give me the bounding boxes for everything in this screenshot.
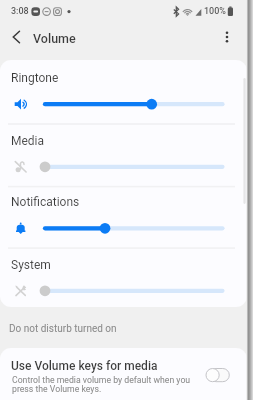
staticText: 3:08 (11, 6, 29, 17)
staticText: Volume (33, 31, 76, 46)
button[interactable] (0, 348, 247, 400)
staticText: Notifications (11, 195, 80, 209)
button[interactable]: Navigate up (6, 27, 26, 47)
button[interactable] (0, 136, 247, 198)
staticText: Ringtone (11, 71, 59, 85)
staticText: 100% (204, 6, 226, 17)
staticText: Do not disturb turned on (9, 323, 117, 335)
staticText: Use Volume keys for media (11, 359, 158, 373)
staticText: Control the media volume by default when… (12, 375, 191, 395)
staticText: Media (11, 134, 45, 148)
button[interactable]: More options (216, 26, 238, 48)
button[interactable] (0, 260, 247, 322)
button[interactable] (0, 197, 247, 259)
staticText: System (11, 258, 51, 272)
button[interactable]: Use Volume keys for media (203, 364, 233, 386)
button[interactable] (0, 73, 247, 135)
